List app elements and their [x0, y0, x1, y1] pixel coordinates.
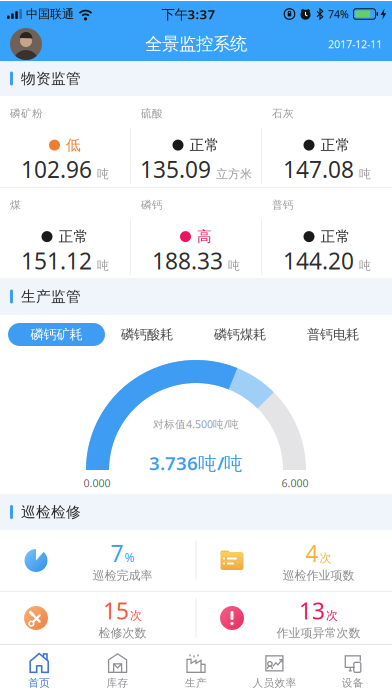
staticText: %	[124, 549, 134, 565]
staticText: 135.09	[140, 154, 211, 184]
staticText: 次	[130, 608, 142, 623]
staticText: 设备	[342, 676, 364, 689]
button[interactable]: 库存	[78, 650, 157, 689]
staticText: 生产监管	[21, 287, 81, 305]
staticText: 次	[326, 608, 338, 623]
staticText: 147.08	[283, 154, 354, 184]
staticText: 中国联通	[26, 7, 74, 21]
staticText: 2017-12-11	[328, 37, 382, 51]
staticText: 磷钙煤耗	[214, 326, 266, 343]
button[interactable]: 生产	[157, 650, 235, 689]
staticText: 普钙	[272, 198, 294, 212]
staticText: 吨	[359, 167, 371, 181]
staticText: 4	[305, 538, 318, 568]
button[interactable]: 磷钙煤耗	[214, 326, 266, 343]
staticText: 13	[299, 596, 325, 626]
staticText: 15	[103, 596, 129, 626]
button[interactable]: 磷钙	[131, 187, 261, 278]
staticText: 151.12	[21, 246, 92, 276]
button[interactable]: 首页	[0, 650, 78, 689]
staticText: 人员效率	[252, 676, 296, 689]
staticText: 磷钙酸耗	[121, 326, 173, 343]
staticText: 144.20	[283, 246, 354, 276]
button[interactable]: 4	[196, 538, 391, 583]
staticText: 0.000	[83, 476, 110, 490]
staticText: 物资监管	[21, 69, 81, 87]
staticText: 吨	[359, 258, 371, 273]
button[interactable]: 人员效率	[235, 650, 314, 689]
staticText: 生产	[185, 676, 207, 689]
staticText: 巡检检修	[21, 503, 81, 521]
staticText: 正常	[320, 136, 350, 154]
staticText: 库存	[107, 676, 129, 689]
staticText: 次	[319, 551, 331, 565]
staticText: 普钙电耗	[307, 326, 359, 343]
staticText: 巡检完成率	[92, 568, 152, 583]
button[interactable]: 用户头像	[10, 28, 42, 60]
button[interactable]: 普钙	[262, 187, 392, 278]
staticText: 低	[66, 136, 81, 154]
staticText: 高	[197, 228, 212, 246]
staticText: 石灰	[272, 107, 294, 120]
staticText: 102.96	[21, 154, 92, 184]
staticText: 磷矿粉	[10, 107, 43, 120]
staticText: 正常	[58, 228, 88, 246]
button[interactable]: 石灰	[262, 96, 392, 187]
staticText: 正常	[320, 228, 350, 246]
staticText: 首页	[28, 676, 50, 689]
staticText: 磷钙	[141, 198, 163, 212]
staticText: 6.000	[281, 476, 308, 490]
staticText: 检修次数	[98, 626, 146, 640]
button[interactable]: 硫酸	[131, 96, 261, 187]
staticText: 正常	[189, 136, 219, 154]
staticText: 74%	[328, 7, 349, 21]
button[interactable]: 15	[0, 596, 195, 640]
staticText: 立方米	[216, 167, 252, 181]
button[interactable]: 磷矿粉	[0, 96, 130, 187]
staticText: 7	[110, 538, 123, 568]
staticText: 作业项异常次数	[276, 626, 360, 640]
staticText: 煤	[10, 198, 21, 212]
staticText: 磷钙矿耗	[30, 326, 82, 343]
staticText: 吨	[97, 258, 109, 273]
button[interactable]: 普钙电耗	[307, 326, 359, 343]
button[interactable]: 设备	[314, 650, 392, 689]
staticText: 全景监控系统	[145, 33, 247, 55]
staticText: 吨	[228, 258, 240, 273]
button[interactable]: 13	[196, 596, 391, 640]
button[interactable]: 磷钙矿耗	[8, 323, 105, 346]
button[interactable]: 磷钙酸耗	[121, 326, 173, 343]
staticText: 下午3:37	[161, 5, 215, 23]
staticText: 硫酸	[141, 107, 163, 120]
button[interactable]: 煤	[0, 187, 130, 278]
button[interactable]: 7	[0, 538, 195, 583]
staticText: 对标值4.500吨/吨	[153, 417, 239, 431]
staticText: 188.33	[152, 246, 223, 276]
staticText: 巡检作业项数	[282, 568, 354, 583]
staticText: 吨	[97, 167, 109, 181]
staticText: 3.736吨/吨	[149, 451, 243, 475]
